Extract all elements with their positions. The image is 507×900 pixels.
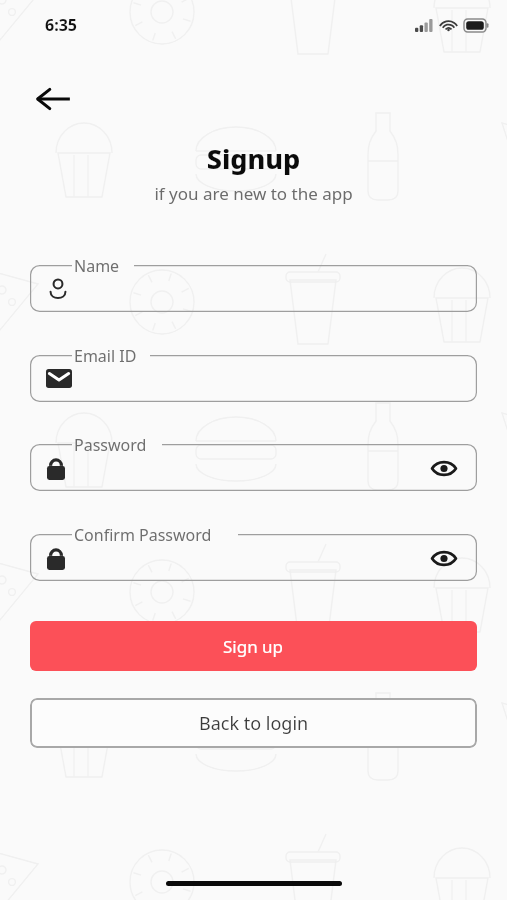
button[interactable]: Toggle password visibility bbox=[30, 534, 477, 581]
button[interactable]: Sign up bbox=[30, 621, 477, 671]
staticText: Signup bbox=[0, 140, 507, 177]
button[interactable]: Back bbox=[26, 72, 80, 126]
staticText: Password bbox=[74, 434, 147, 456]
staticText: Name bbox=[74, 255, 120, 277]
button[interactable] bbox=[30, 355, 477, 402]
button[interactable]: Back to login bbox=[30, 698, 477, 748]
staticText: Sign up bbox=[223, 635, 284, 658]
staticText: if you are new to the app bbox=[0, 182, 507, 205]
button[interactable]: Toggle password visibility bbox=[427, 451, 461, 485]
staticText: Email ID bbox=[74, 345, 137, 367]
button[interactable]: Toggle password visibility bbox=[30, 444, 477, 491]
staticText: Confirm Password bbox=[74, 524, 212, 546]
staticText: Back to login bbox=[199, 711, 309, 736]
staticText: 6:35 bbox=[45, 14, 77, 36]
button[interactable] bbox=[30, 265, 477, 312]
button[interactable]: Toggle password visibility bbox=[427, 541, 461, 575]
